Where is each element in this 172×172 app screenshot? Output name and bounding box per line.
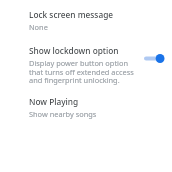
button[interactable]: Show lockdown option, on [144,52,165,65]
staticText: Lock screen message [29,9,114,20]
button[interactable]: Lock screen message [29,9,169,32]
staticText: Show nearby songs [29,109,97,119]
staticText: Show lockdown option [29,45,119,56]
staticText: Now Playing [29,96,79,107]
staticText: None [29,22,48,32]
button[interactable]: Show lockdown option [29,45,169,85]
button[interactable]: Now Playing [29,96,169,119]
staticText: Display power button option that turns o… [29,58,138,85]
